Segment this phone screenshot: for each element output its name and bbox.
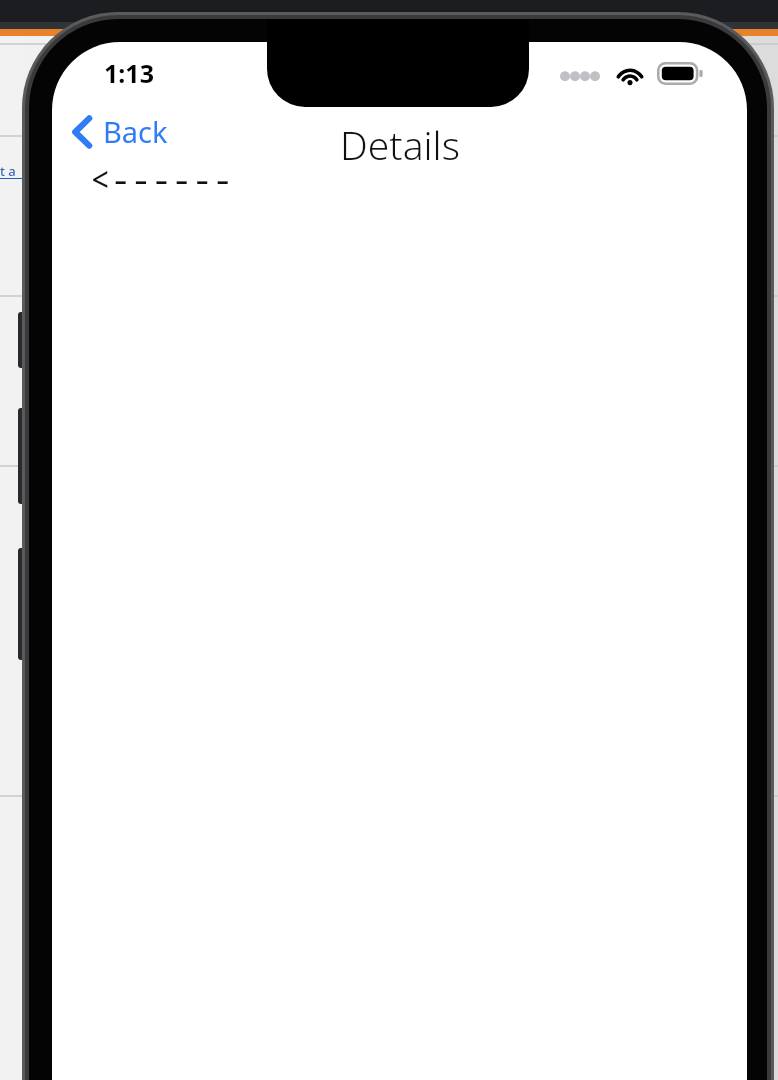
- staticText: Back: [103, 112, 168, 151]
- staticText: Details: [340, 118, 460, 171]
- staticText: t a: [0, 162, 16, 180]
- button[interactable]: Back: [62, 106, 178, 157]
- button[interactable]: <------: [86, 154, 237, 204]
- staticText: 1:13: [104, 56, 154, 90]
